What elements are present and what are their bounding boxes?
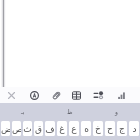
staticText: بـ (21, 108, 25, 115)
button[interactable]: Text format (23, 87, 46, 103)
button[interactable]: و (93, 103, 140, 119)
button[interactable]: ف (45, 121, 55, 136)
button[interactable]: ع (69, 121, 79, 136)
button[interactable]: ض (1, 121, 10, 136)
staticText: ق (35, 124, 42, 134)
button[interactable]: ه (81, 121, 91, 136)
staticText: ث (23, 124, 32, 134)
button[interactable]: Chart (110, 87, 133, 103)
button[interactable]: ق (34, 121, 43, 136)
staticText: ع (71, 124, 77, 134)
staticText: و (115, 108, 118, 115)
button[interactable]: ص (12, 121, 21, 136)
button[interactable]: ح (105, 121, 115, 136)
button[interactable]: خ (93, 121, 103, 136)
button[interactable]: Insert table (67, 87, 86, 103)
button[interactable]: ظ (46, 103, 93, 119)
staticText: ح (107, 124, 113, 134)
button[interactable]: غ (57, 121, 67, 136)
button[interactable]: ث (23, 121, 32, 136)
button[interactable]: د (129, 121, 139, 136)
button[interactable]: بـ (0, 103, 46, 119)
staticText: ظ (67, 108, 73, 115)
button[interactable]: ج (117, 121, 127, 136)
button[interactable]: Close (0, 87, 23, 103)
staticText: ض (1, 124, 10, 134)
staticText: غ (59, 124, 65, 134)
button[interactable]: Attach file (46, 87, 67, 103)
button[interactable]: Settings (86, 87, 110, 103)
staticText: د (132, 124, 137, 134)
staticText: ص (12, 124, 21, 134)
staticText: ه (84, 124, 89, 134)
staticText: ف (45, 124, 55, 134)
staticText: ج (119, 124, 125, 134)
staticText: خ (95, 124, 101, 134)
